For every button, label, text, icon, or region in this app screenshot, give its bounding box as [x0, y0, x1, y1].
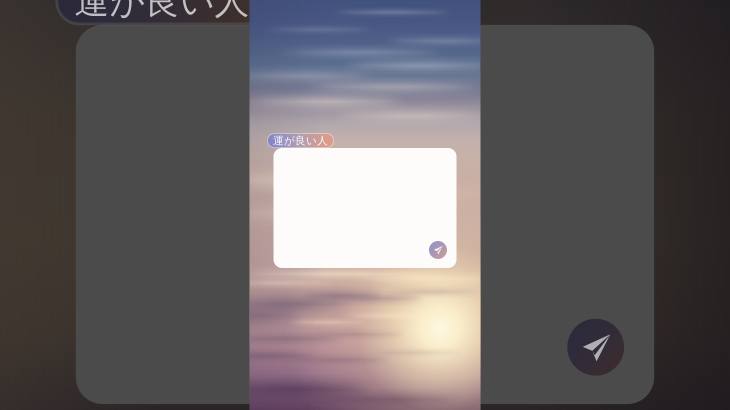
button[interactable]: 運が良い人	[57, 0, 267, 24]
button[interactable]: Send	[567, 319, 624, 376]
button[interactable]: Send	[429, 241, 447, 259]
button[interactable]	[273, 148, 456, 268]
button[interactable]	[76, 25, 654, 404]
button[interactable]: 運が良い人	[267, 133, 334, 148]
staticText: 運が良い人	[273, 134, 328, 147]
staticText: 運が良い人	[75, 0, 250, 23]
